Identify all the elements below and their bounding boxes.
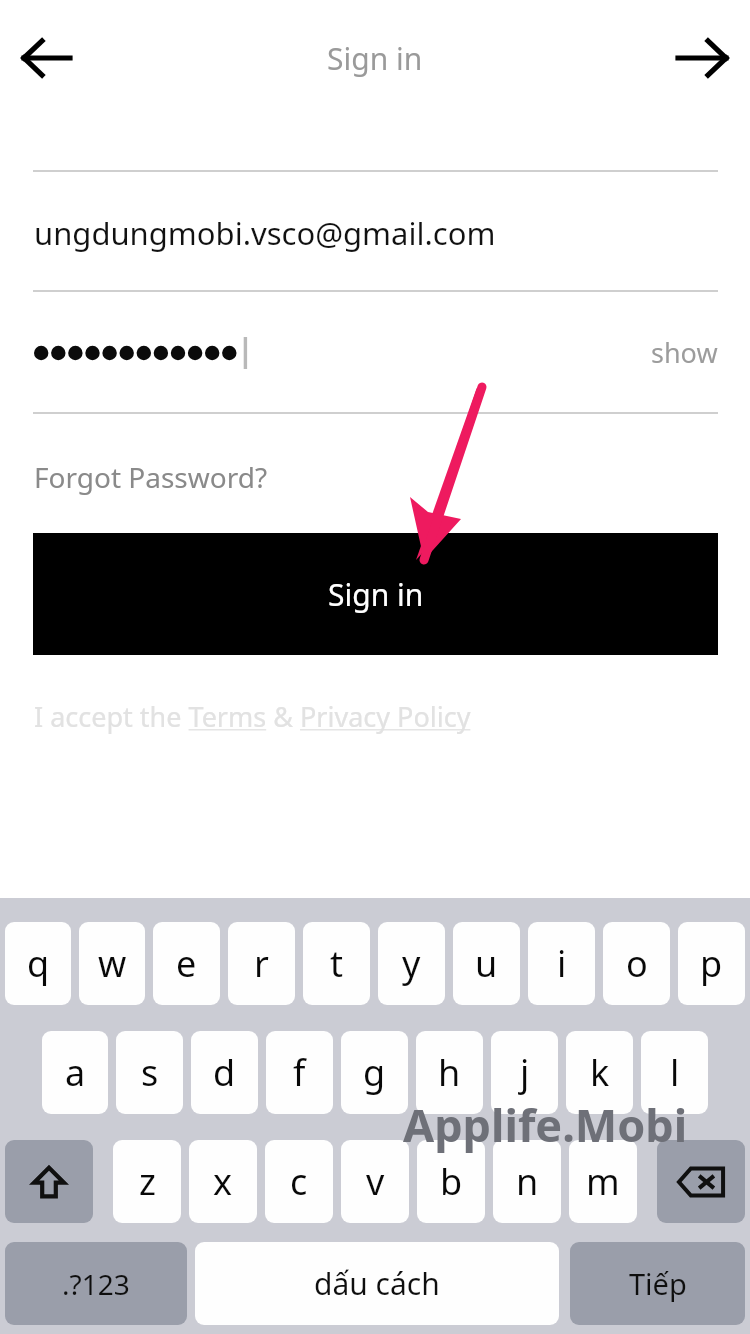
staticText: x bbox=[213, 1157, 233, 1206]
button[interactable]: Tiếp bbox=[570, 1242, 745, 1325]
staticText: k bbox=[590, 1048, 610, 1097]
button[interactable]: z bbox=[113, 1140, 181, 1223]
staticText: Tiếp bbox=[629, 1264, 687, 1303]
staticText: Sign in bbox=[327, 38, 423, 79]
button[interactable]: p bbox=[678, 922, 745, 1005]
button[interactable]: g bbox=[341, 1031, 408, 1114]
staticText: w bbox=[98, 939, 127, 988]
staticText: f bbox=[293, 1048, 306, 1097]
staticText: Applife.Mobi bbox=[403, 1094, 688, 1155]
staticText: q bbox=[27, 939, 50, 988]
button[interactable]: .?123 bbox=[5, 1242, 187, 1325]
staticText: j bbox=[520, 1048, 530, 1097]
staticText: p bbox=[700, 939, 723, 988]
button[interactable]: a bbox=[42, 1031, 108, 1114]
staticText: Sign in bbox=[328, 574, 424, 615]
button[interactable]: h bbox=[416, 1031, 483, 1114]
button[interactable]: w bbox=[79, 922, 145, 1005]
button[interactable]: show bbox=[651, 334, 718, 371]
staticText: d bbox=[213, 1048, 236, 1097]
button[interactable]: u bbox=[453, 922, 520, 1005]
staticText: u bbox=[475, 939, 498, 988]
button[interactable]: Password bbox=[34, 338, 254, 368]
staticText: m bbox=[586, 1157, 620, 1206]
staticText: c bbox=[290, 1157, 308, 1206]
button[interactable]: y bbox=[378, 922, 445, 1005]
staticText: i bbox=[557, 939, 567, 988]
staticText: ungdungmobi.vsco@gmail.com bbox=[34, 212, 496, 254]
button[interactable]: Forgot Password? bbox=[34, 458, 268, 496]
staticText: t bbox=[330, 939, 343, 988]
button[interactable]: t bbox=[303, 922, 370, 1005]
staticText: g bbox=[363, 1048, 386, 1097]
button[interactable]: n bbox=[493, 1140, 561, 1223]
button[interactable]: i bbox=[528, 922, 595, 1005]
button[interactable]: c bbox=[265, 1140, 333, 1223]
button[interactable]: x bbox=[189, 1140, 257, 1223]
button[interactable]: d bbox=[191, 1031, 258, 1114]
button[interactable]: I accept the Terms & Privacy Policy bbox=[34, 698, 471, 735]
staticText: s bbox=[141, 1048, 159, 1097]
staticText: b bbox=[440, 1157, 463, 1206]
button[interactable]: Shift bbox=[5, 1140, 93, 1223]
button[interactable]: Backspace bbox=[657, 1140, 745, 1223]
staticText: .?123 bbox=[62, 1265, 130, 1303]
staticText: o bbox=[626, 939, 648, 988]
staticText: z bbox=[139, 1157, 156, 1206]
staticText: y bbox=[402, 939, 421, 988]
button[interactable]: v bbox=[341, 1140, 409, 1223]
button[interactable]: q bbox=[5, 922, 71, 1005]
staticText: I accept the Terms & Privacy Policy bbox=[34, 698, 471, 735]
button[interactable]: Back bbox=[14, 24, 82, 92]
button[interactable]: ungdungmobi.vsco@gmail.com bbox=[0, 172, 750, 290]
staticText: dấu cách bbox=[314, 1263, 440, 1304]
button[interactable]: r bbox=[228, 922, 295, 1005]
staticText: a bbox=[65, 1048, 86, 1097]
staticText: r bbox=[254, 939, 269, 988]
button[interactable]: e bbox=[153, 922, 220, 1005]
button[interactable]: dấu cách bbox=[195, 1242, 559, 1325]
staticText: show bbox=[651, 334, 718, 371]
button[interactable]: s bbox=[116, 1031, 183, 1114]
button[interactable]: f bbox=[266, 1031, 333, 1114]
button[interactable]: l bbox=[641, 1031, 708, 1114]
button[interactable]: b bbox=[417, 1140, 485, 1223]
button[interactable]: Next bbox=[668, 24, 736, 92]
button[interactable]: o bbox=[603, 922, 670, 1005]
staticText: l bbox=[670, 1048, 680, 1097]
button[interactable]: j bbox=[491, 1031, 558, 1114]
button[interactable]: k bbox=[566, 1031, 633, 1114]
button[interactable]: m bbox=[569, 1140, 637, 1223]
staticText: n bbox=[516, 1157, 539, 1206]
staticText: e bbox=[176, 939, 197, 988]
staticText: h bbox=[438, 1048, 461, 1097]
staticText: v bbox=[366, 1157, 385, 1206]
button[interactable]: Sign in bbox=[33, 533, 718, 655]
staticText: Forgot Password? bbox=[34, 458, 268, 496]
